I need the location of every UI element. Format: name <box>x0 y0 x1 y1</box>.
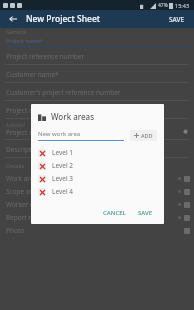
staticText: Scope of work <box>6 187 178 196</box>
staticText: Address* <box>6 122 26 128</box>
staticText: Level 2 <box>52 161 73 170</box>
staticText: ADD <box>141 132 153 139</box>
button[interactable]: Delete Level 4 <box>38 185 157 198</box>
staticText: Project address* <box>6 128 182 137</box>
button[interactable]: Delete Level 2 <box>38 159 157 172</box>
button[interactable]: Delete Level 1 <box>38 149 46 157</box>
staticText: General <box>6 28 27 35</box>
button[interactable]: Delete Level 2 <box>38 162 46 170</box>
staticText: 15:43 <box>175 2 190 9</box>
staticText: Worker group <box>6 200 178 209</box>
button[interactable]: Delete Level 3 <box>38 172 157 185</box>
staticText: Details <box>6 162 25 169</box>
staticText: Level 3 <box>52 174 73 183</box>
button[interactable]: Back <box>6 12 20 26</box>
button[interactable]: SAVE <box>134 206 157 220</box>
button[interactable]: CANCEL <box>99 206 130 220</box>
staticText: Work areas <box>51 111 95 122</box>
staticText: Photo <box>6 226 184 235</box>
staticText: Project reference number <box>6 52 85 61</box>
staticText: Level 4 <box>52 187 73 196</box>
button[interactable]: ADD <box>130 130 157 141</box>
staticText: New work area <box>38 130 81 138</box>
staticText: Work areas <box>6 174 178 183</box>
staticText: Customer's project reference number <box>6 88 121 97</box>
button[interactable]: SAVE <box>166 12 188 27</box>
staticText: Project name* <box>6 37 44 44</box>
staticText: Customer name* <box>6 70 59 79</box>
staticText: 47% <box>158 2 168 9</box>
staticText: New Project Sheet <box>26 13 166 25</box>
staticText: CANCEL <box>103 209 126 217</box>
staticText: Level 1 <box>52 148 73 157</box>
button[interactable]: Delete Level 4 <box>38 188 46 196</box>
button[interactable]: Delete Level 3 <box>38 175 46 183</box>
staticText: Project contact name* <box>6 106 75 115</box>
button[interactable]: Delete Level 1 <box>38 146 157 159</box>
staticText: SAVE <box>138 209 153 217</box>
staticText: SAVE <box>169 15 185 24</box>
staticText: Report recipients <box>6 213 178 222</box>
staticText: Description <box>6 145 41 154</box>
